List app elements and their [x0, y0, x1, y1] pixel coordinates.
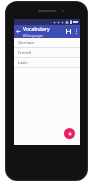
- button[interactable]: Latin: [14, 58, 80, 67]
- button[interactable]: More options: [73, 25, 80, 38]
- button[interactable]: German: [14, 38, 80, 47]
- button[interactable]: Vocabulary: [23, 25, 64, 38]
- button[interactable]: Add language: [64, 128, 75, 139]
- button[interactable]: Save: [64, 25, 73, 38]
- staticText: German: [18, 40, 34, 46]
- staticText: Vocabulary: [23, 26, 50, 33]
- button[interactable]: French: [14, 48, 80, 57]
- staticText: All languages: [23, 34, 44, 38]
- button[interactable]: Navigate up: [14, 25, 23, 38]
- staticText: Latin: [18, 60, 28, 66]
- staticText: French: [18, 50, 32, 56]
